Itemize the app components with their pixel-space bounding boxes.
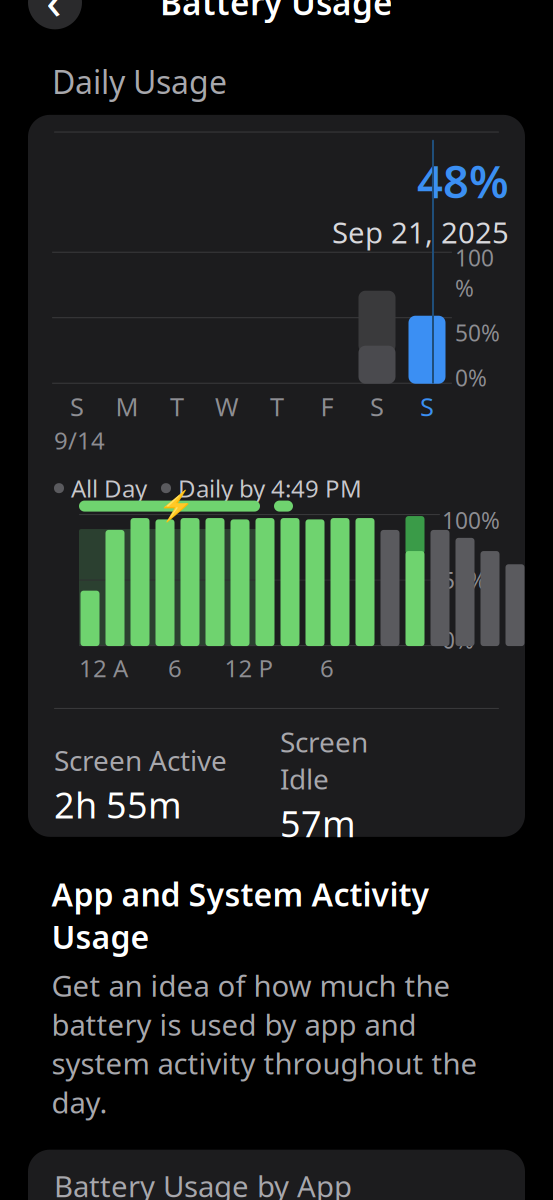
staticText: T xyxy=(270,390,284,423)
staticText: Screen Idle xyxy=(280,723,368,797)
staticText: Daily Usage xyxy=(52,60,227,103)
button[interactable]: Back xyxy=(28,0,82,29)
staticText: Get an idea of how much the battery is u… xyxy=(51,966,477,1122)
staticText: 12 P xyxy=(224,652,273,684)
staticText: Daily by 4:49 PM xyxy=(178,472,362,504)
staticText: 9/14 xyxy=(54,424,105,456)
staticText: 100% xyxy=(455,243,494,303)
staticText: Battery Usage by App xyxy=(54,1166,352,1200)
staticText: 12 A xyxy=(79,652,128,684)
staticText: 100% xyxy=(442,505,500,535)
staticText: 50% xyxy=(442,565,487,595)
staticText: 6 xyxy=(168,652,182,684)
staticText: 50% xyxy=(455,318,500,348)
staticText: 6 xyxy=(320,652,334,684)
staticText: 57m xyxy=(280,799,356,847)
staticText: S xyxy=(420,390,434,423)
staticText: All Day xyxy=(71,472,147,504)
staticText: M xyxy=(115,390,138,423)
staticText: Battery Usage xyxy=(160,0,393,24)
staticText: ‹ xyxy=(46,0,62,33)
staticText: 48% xyxy=(417,151,509,211)
staticText: T xyxy=(170,390,184,423)
staticText: 0% xyxy=(455,363,487,393)
staticText: F xyxy=(320,390,333,423)
staticText: 0% xyxy=(442,625,474,655)
staticText: ⚡ xyxy=(158,489,195,523)
staticText: Screen Active xyxy=(54,742,227,779)
staticText: 2h 55m xyxy=(54,781,182,828)
staticText: W xyxy=(215,390,239,423)
staticText: S xyxy=(370,390,384,423)
staticText: App and System Activity Usage xyxy=(51,873,429,958)
staticText: S xyxy=(70,390,84,423)
staticText: Sep 21, 2025 xyxy=(332,213,509,252)
